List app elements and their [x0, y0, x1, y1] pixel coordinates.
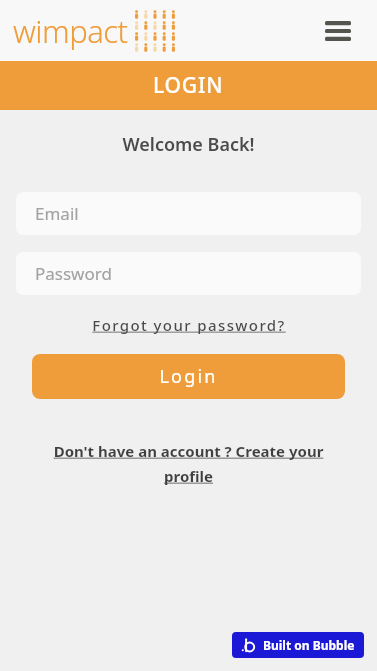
staticText: Email	[35, 202, 79, 225]
staticText: Forgot your password?	[92, 315, 286, 335]
staticText: wimpact	[13, 10, 128, 52]
staticText: Login	[159, 364, 218, 389]
staticText: Built on Bubble	[263, 637, 355, 653]
button[interactable]: Menu	[321, 14, 355, 48]
button[interactable]: Don't have an account ? Create your prof…	[30, 441, 347, 486]
staticText: Password	[35, 262, 112, 285]
button[interactable]: Forgot your password?	[0, 315, 377, 335]
button[interactable]: Password	[16, 252, 361, 295]
staticText: Welcome Back!	[0, 132, 377, 157]
staticText: LOGIN	[153, 71, 224, 100]
staticText: Don't have an account ? Create your prof…	[30, 441, 347, 486]
button[interactable]: Login	[32, 354, 345, 399]
button[interactable]: Email	[16, 192, 361, 235]
button[interactable]: Built on Bubble	[232, 632, 364, 658]
